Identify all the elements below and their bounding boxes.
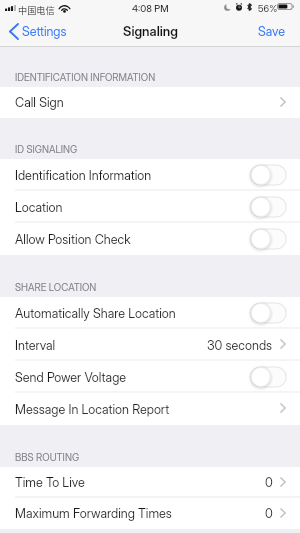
- button[interactable]: Identification Information: [246, 163, 287, 187]
- button[interactable]: Maximum Forwarding Times: [0, 498, 300, 529]
- staticText: Call Sign: [15, 95, 64, 110]
- staticText: ID SIGNALING: [15, 143, 78, 155]
- button[interactable]: Time To Live: [0, 467, 300, 498]
- staticText: 0: [265, 475, 273, 490]
- button[interactable]: Location: [246, 195, 287, 219]
- staticText: Interval: [15, 338, 56, 353]
- staticText: Automatically Share Location: [15, 306, 176, 321]
- staticText: SHARE LOCATION: [15, 281, 97, 293]
- staticText: Settings: [22, 24, 67, 39]
- staticText: Allow Position Check: [15, 232, 131, 247]
- button[interactable]: Call Sign: [0, 87, 300, 118]
- staticText: BBS ROUTING: [15, 451, 80, 463]
- staticText: Maximum Forwarding Times: [15, 506, 172, 521]
- button[interactable]: Automatically Share Location: [0, 297, 300, 329]
- button[interactable]: Save: [250, 21, 300, 41]
- button[interactable]: Location: [0, 191, 300, 223]
- button[interactable]: Settings: [0, 21, 73, 41]
- button[interactable]: Allow Position Check: [246, 227, 287, 251]
- staticText: Send Power Voltage: [15, 370, 127, 385]
- button[interactable]: Interval: [0, 329, 300, 361]
- staticText: Signaling: [123, 23, 178, 39]
- button[interactable]: Identification Information: [0, 159, 300, 191]
- staticText: 中国电信: [18, 3, 55, 16]
- staticText: Location: [15, 200, 63, 215]
- staticText: 30 seconds: [207, 338, 273, 353]
- staticText: Identification Information: [15, 168, 152, 183]
- button[interactable]: Send Power Voltage: [0, 361, 300, 393]
- staticText: 4:08 PM: [132, 3, 169, 15]
- button[interactable]: Message In Location Report: [0, 393, 300, 425]
- staticText: Time To Live: [15, 475, 85, 490]
- staticText: IDENTIFICATION INFORMATION: [15, 71, 156, 83]
- button[interactable]: Automatically Share Location: [246, 301, 287, 325]
- staticText: Message In Location Report: [15, 402, 170, 417]
- staticText: 0: [265, 506, 273, 521]
- staticText: 56%: [258, 3, 278, 15]
- button[interactable]: Allow Position Check: [0, 223, 300, 255]
- staticText: Save: [258, 24, 285, 39]
- button[interactable]: Send Power Voltage: [246, 365, 287, 389]
